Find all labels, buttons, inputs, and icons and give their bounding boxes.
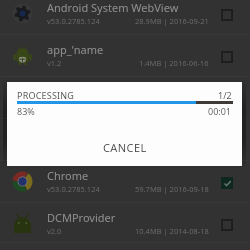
button[interactable]: Select app xyxy=(219,175,235,191)
staticText: 00:01 xyxy=(208,105,232,117)
staticText: Android System WebView xyxy=(47,0,179,15)
staticText: 1/2 xyxy=(218,89,232,101)
staticText: DCMProvider xyxy=(47,210,116,225)
button[interactable]: Messaging xyxy=(0,77,250,119)
staticText: 28.9MB | 2016-09-21 xyxy=(135,16,209,26)
button[interactable]: Select app xyxy=(219,7,235,23)
staticText: 7.2MB | 2015-02-11 xyxy=(139,100,209,110)
button[interactable]: Select app xyxy=(219,49,235,65)
button[interactable]: Select app xyxy=(219,91,235,107)
staticText: v1.0 xyxy=(47,100,62,110)
staticText: v53.0.2785.124 xyxy=(47,184,100,194)
button[interactable]: Android System WebView xyxy=(0,0,250,35)
staticText: PROCESSING xyxy=(17,89,75,101)
staticText: v1.2 xyxy=(47,58,62,68)
button[interactable]: app_'name xyxy=(0,35,250,77)
button[interactable]: Chrome xyxy=(0,161,250,203)
staticText: v2.0 xyxy=(47,226,62,236)
button[interactable]: CANCEL xyxy=(7,130,242,164)
staticText: 1.4MB | 2016-06-16 xyxy=(139,58,209,68)
staticText: 59.7MB | 2016-09-18 xyxy=(135,184,209,194)
staticText: 83% xyxy=(17,105,35,117)
staticText: 10.4MB | 2014-08-18 xyxy=(135,226,209,236)
staticText: v53.0.2785.124 xyxy=(47,16,100,26)
staticText: CANCEL xyxy=(103,140,147,155)
staticText: 4.8MB | 2015-07-30 xyxy=(139,142,209,152)
staticText: app_'name xyxy=(47,42,104,57)
button[interactable]: Select app xyxy=(219,217,235,233)
staticText: Messaging xyxy=(47,84,104,99)
staticText: Chrome xyxy=(47,168,89,183)
button[interactable]: Calendar xyxy=(0,119,250,161)
button[interactable]: DCMProvider xyxy=(0,203,250,243)
